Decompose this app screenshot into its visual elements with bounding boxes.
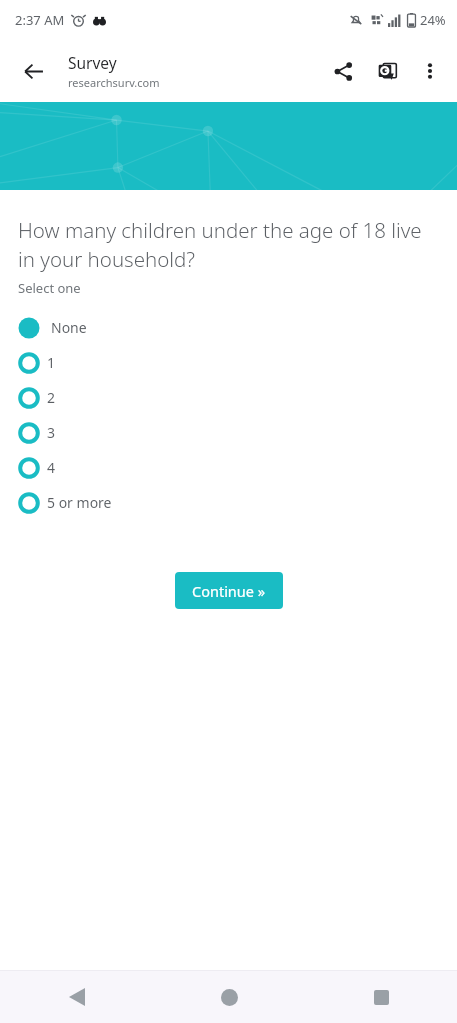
button[interactable]: Home [153, 971, 305, 1023]
button[interactable]: More options [409, 50, 451, 92]
staticText: Select one [18, 279, 81, 297]
staticText: None [51, 318, 87, 337]
staticText: 5 or more [47, 493, 112, 512]
button[interactable]: Share [321, 49, 365, 93]
staticText: 1 [47, 353, 56, 372]
button[interactable]: 2 [0, 380, 457, 415]
staticText: Survey [68, 52, 117, 73]
staticText: 2 [47, 388, 56, 407]
button[interactable]: 5 or more [0, 485, 457, 520]
staticText: researchsurv.com [68, 75, 160, 90]
staticText: Continue » [192, 581, 266, 601]
button[interactable]: None [0, 310, 457, 345]
staticText: 2:37 AM [15, 11, 65, 29]
staticText: 24% [420, 11, 446, 29]
staticText: 3 [47, 423, 56, 442]
button[interactable]: Translate [365, 49, 409, 93]
button[interactable]: Continue » [175, 572, 283, 609]
button[interactable]: Recent apps [305, 971, 457, 1023]
button[interactable]: 4 [0, 450, 457, 485]
button[interactable]: Back [10, 48, 56, 94]
staticText: How many children under the age of 18 li… [18, 216, 427, 273]
button[interactable]: Back [0, 971, 153, 1023]
staticText: 4 [47, 458, 56, 477]
button[interactable]: 3 [0, 415, 457, 450]
button[interactable]: 1 [0, 345, 457, 380]
